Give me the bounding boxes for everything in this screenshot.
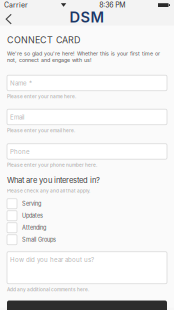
staticText: We're so glad you're here! Whether this … xyxy=(7,50,160,63)
staticText: Small Groups xyxy=(22,236,56,243)
button[interactable]: Phone xyxy=(7,144,167,171)
button[interactable]: Back xyxy=(0,11,22,28)
staticText: How did you hear about us? xyxy=(10,256,94,263)
staticText: Please enter your phone number here. xyxy=(7,162,97,168)
button[interactable]: Name * xyxy=(7,75,167,102)
staticText: Name * xyxy=(10,80,32,87)
staticText: Email xyxy=(10,114,24,121)
staticText: Carrier xyxy=(4,1,28,9)
button[interactable]: How did you hear about us? xyxy=(7,252,167,284)
button[interactable]: Serving xyxy=(7,198,167,210)
button[interactable]: Small Groups xyxy=(7,234,167,246)
button[interactable]: Submit xyxy=(7,300,167,310)
staticText: Add any additional comments here. xyxy=(7,287,89,292)
staticText: Updates xyxy=(22,212,43,219)
staticText: Please enter your name here. xyxy=(7,93,76,99)
button[interactable]: Updates xyxy=(7,210,167,222)
button[interactable]: Attending xyxy=(7,222,167,234)
staticText: Please check any and all that apply. xyxy=(7,188,90,194)
staticText: 8:36 PM xyxy=(99,1,125,9)
staticText: Phone xyxy=(10,148,30,155)
staticText: Serving xyxy=(22,200,41,207)
staticText: Please enter your email here. xyxy=(7,127,75,133)
staticText: CONNECT CARD xyxy=(7,34,80,45)
button[interactable]: Email xyxy=(7,109,167,136)
staticText: What are you interested in? xyxy=(7,176,100,185)
staticText: Attending xyxy=(22,224,46,231)
staticText: DSM xyxy=(69,8,104,26)
